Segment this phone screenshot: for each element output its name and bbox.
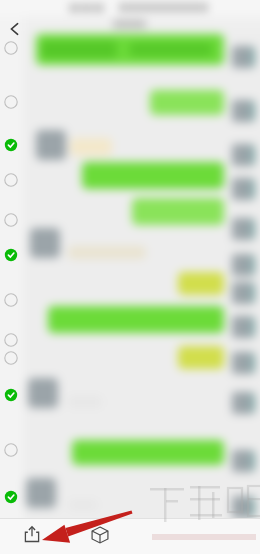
button[interactable]: Select [4, 95, 18, 109]
button[interactable]: Select [4, 213, 18, 227]
button[interactable]: Select [4, 41, 18, 55]
button[interactable]: Select [4, 333, 18, 347]
button[interactable]: Selected [4, 388, 18, 402]
button[interactable]: Collect [89, 524, 111, 546]
button[interactable]: Select [4, 443, 18, 457]
button[interactable]: Select [4, 351, 18, 365]
button[interactable]: Selected [4, 248, 18, 262]
button[interactable]: Share [21, 523, 43, 545]
button[interactable]: Selected [4, 490, 18, 504]
button[interactable]: Selected [4, 138, 18, 152]
button[interactable]: Select [4, 173, 18, 187]
button[interactable]: Select [4, 293, 18, 307]
button[interactable]: Back [4, 18, 26, 40]
